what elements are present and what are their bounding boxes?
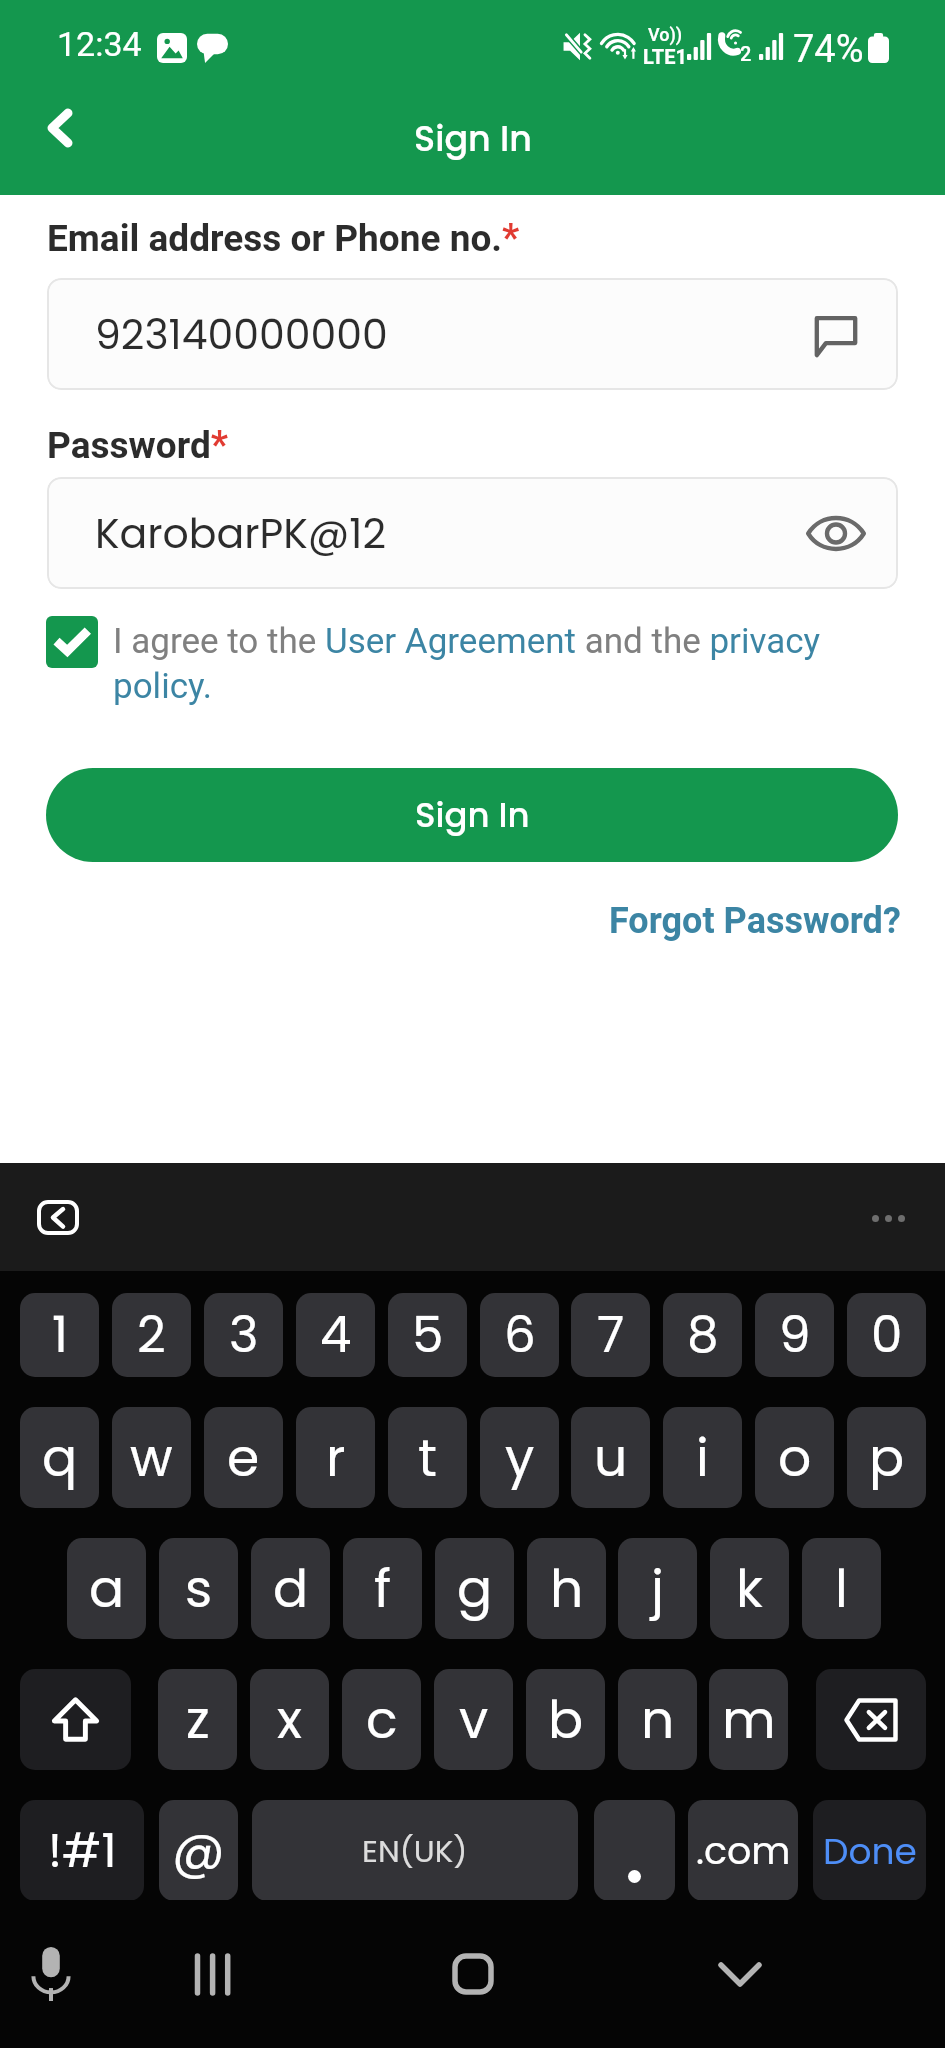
button[interactable]: i [663, 1407, 742, 1508]
button[interactable]: 9 [755, 1293, 834, 1377]
button[interactable]: j [618, 1538, 697, 1639]
staticText: 2 [740, 42, 752, 65]
button[interactable]: l [802, 1538, 881, 1639]
button[interactable]: Voice input [15, 1938, 87, 2010]
staticText: LTE1 [643, 45, 687, 68]
button[interactable]: 4 [296, 1293, 375, 1377]
button[interactable]: 7 [571, 1293, 650, 1377]
button[interactable]: z [158, 1669, 237, 1770]
staticText: s [185, 1552, 213, 1625]
button[interactable]: Previous field [21, 1184, 95, 1250]
staticText: 1 [52, 1300, 68, 1370]
button[interactable]: w [112, 1407, 191, 1508]
staticText: f [374, 1552, 392, 1625]
button[interactable]: o [755, 1407, 834, 1508]
staticText: Password* [47, 423, 228, 468]
button[interactable]: Forgot Password? [609, 900, 901, 942]
button[interactable]: Shift [20, 1669, 131, 1770]
button[interactable]: Home [437, 1938, 509, 2010]
staticText: p [869, 1421, 905, 1494]
staticText: l [835, 1552, 848, 1625]
button[interactable]: I agree to the terms [46, 616, 98, 668]
staticText: d [273, 1552, 309, 1625]
staticText: Done [823, 1826, 917, 1876]
button[interactable]: d [251, 1538, 330, 1639]
button[interactable]: 1 [20, 1293, 99, 1377]
staticText: k [736, 1552, 763, 1625]
staticText: y [505, 1421, 535, 1494]
button[interactable]: y [480, 1407, 559, 1508]
staticText: 12:34 [57, 24, 142, 64]
button[interactable]: x [250, 1669, 329, 1770]
staticText: EN(UK) [362, 1829, 468, 1872]
staticText: i [696, 1421, 709, 1494]
button[interactable]: 0 [847, 1293, 926, 1377]
staticText: h [550, 1552, 584, 1625]
staticText: e [227, 1421, 260, 1494]
staticText: r [326, 1421, 346, 1494]
staticText: 7 [597, 1300, 625, 1370]
staticText: v [459, 1683, 489, 1756]
button[interactable]: 6 [480, 1293, 559, 1377]
button[interactable]: v [434, 1669, 513, 1770]
button[interactable]: Backspace [816, 1669, 926, 1770]
staticText: 3 [229, 1300, 259, 1370]
button[interactable]: b [526, 1669, 605, 1770]
staticText: z [186, 1683, 210, 1756]
staticText: 4 [320, 1300, 352, 1370]
staticText: Email address or Phone no.* [47, 216, 520, 261]
button[interactable]: !#1 [20, 1800, 144, 1901]
button[interactable]: KarobarPK@12 [47, 477, 898, 589]
button[interactable]: @ [159, 1800, 238, 1901]
button[interactable]: EN(UK) [252, 1800, 578, 1901]
button[interactable]: 8 [663, 1293, 742, 1377]
button[interactable]: a [67, 1538, 146, 1639]
staticText: g [457, 1552, 493, 1625]
button[interactable]: .com [688, 1800, 798, 1901]
button[interactable]: 3 [204, 1293, 283, 1377]
button[interactable]: n [618, 1669, 697, 1770]
staticText: w [130, 1421, 173, 1494]
button[interactable]: Period [594, 1800, 675, 1901]
staticText: o [778, 1421, 812, 1494]
button[interactable]: More options [872, 1215, 905, 1222]
button[interactable]: g [435, 1538, 514, 1639]
button[interactable]: p [847, 1407, 926, 1508]
button[interactable]: c [342, 1669, 421, 1770]
staticText: !#1 [48, 1818, 117, 1884]
button[interactable]: 2 [112, 1293, 191, 1377]
button[interactable]: Hide keyboard [704, 1938, 776, 2010]
staticText: @ [172, 1814, 225, 1887]
button[interactable]: k [710, 1538, 789, 1639]
staticText: KarobarPK@12 [95, 505, 387, 562]
button[interactable]: e [204, 1407, 283, 1508]
button[interactable]: m [709, 1669, 788, 1770]
staticText: a [89, 1552, 125, 1625]
staticText: I agree to the User Agreement and the pr… [113, 621, 873, 706]
button[interactable]: 923140000000 [47, 278, 898, 390]
button[interactable]: h [527, 1538, 606, 1639]
button[interactable]: r [296, 1407, 375, 1508]
button[interactable]: Sign In [46, 768, 898, 862]
staticText: 9 [779, 1300, 811, 1370]
button[interactable]: t [388, 1407, 467, 1508]
staticText: 6 [504, 1300, 536, 1370]
staticText: 2 [137, 1300, 166, 1370]
staticText: 923140000000 [95, 306, 388, 363]
button[interactable]: Back [12, 86, 108, 170]
staticText: q [42, 1421, 78, 1494]
staticText: j [651, 1552, 664, 1625]
staticText: b [548, 1683, 584, 1756]
staticText: 74% [793, 27, 864, 72]
staticText: t [418, 1421, 437, 1494]
staticText: x [277, 1683, 302, 1756]
button[interactable]: Recent apps [177, 1938, 249, 2010]
staticText: Sign In [414, 114, 532, 163]
button[interactable]: Done [813, 1800, 926, 1901]
button[interactable]: s [159, 1538, 238, 1639]
button[interactable]: 5 [388, 1293, 467, 1377]
staticText: n [641, 1683, 675, 1756]
button[interactable]: q [20, 1407, 99, 1508]
button[interactable]: f [343, 1538, 422, 1639]
button[interactable]: u [571, 1407, 650, 1508]
